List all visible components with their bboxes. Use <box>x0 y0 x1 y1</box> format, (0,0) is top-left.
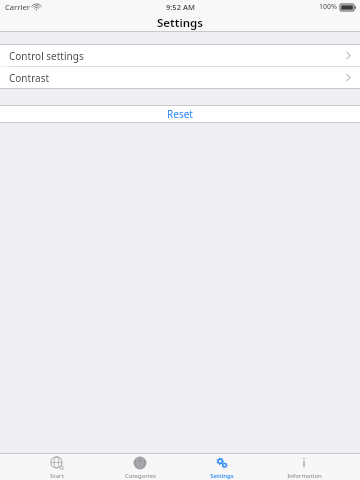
staticText: Settings <box>210 472 234 480</box>
staticText: Carrier <box>5 2 30 12</box>
staticText: 100% <box>319 2 337 12</box>
button[interactable]: Information <box>278 454 330 480</box>
button[interactable]: Control settings <box>0 45 360 66</box>
button[interactable]: Start <box>31 454 83 480</box>
button[interactable]: Contrast <box>0 67 360 88</box>
staticText: Categories <box>125 472 156 480</box>
button[interactable]: Settings <box>196 454 248 480</box>
staticText: Information <box>287 472 322 480</box>
staticText: Contrast <box>9 71 50 85</box>
staticText: Settings <box>157 15 203 31</box>
staticText: Start <box>50 472 64 480</box>
staticText: Reset <box>167 107 193 121</box>
staticText: 9:52 AM <box>166 2 195 12</box>
button[interactable]: Reset <box>0 106 360 122</box>
button[interactable]: Categories <box>114 454 166 480</box>
staticText: Control settings <box>9 49 84 63</box>
